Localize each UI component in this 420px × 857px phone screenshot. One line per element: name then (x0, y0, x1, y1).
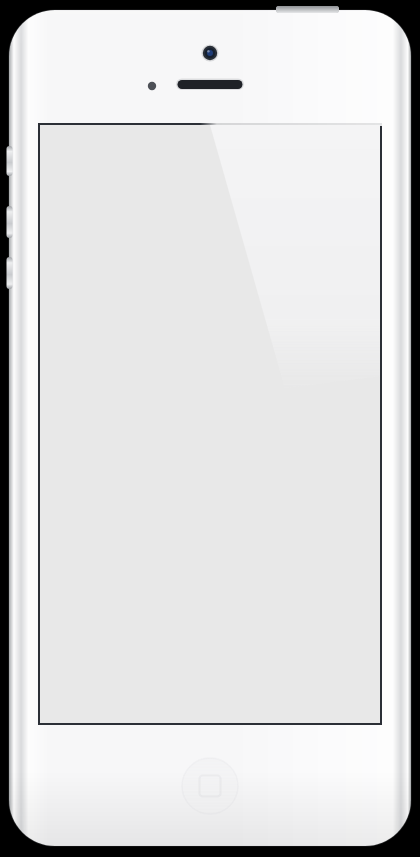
button[interactable]: Ring/Silent switch (4, 144, 16, 178)
button[interactable]: Volume down (4, 255, 16, 291)
button[interactable]: Volume up (4, 204, 16, 240)
button[interactable]: Home button (182, 758, 238, 814)
button[interactable]: Power button (274, 2, 341, 16)
other: White smartphone device mockup (0, 0, 420, 857)
button[interactable]: Device screen (40, 125, 380, 723)
